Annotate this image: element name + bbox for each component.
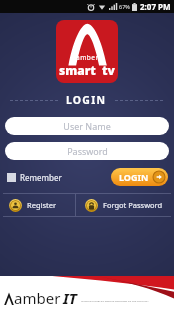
staticText: 67%	[119, 3, 130, 10]
staticText: amber	[14, 288, 61, 308]
button[interactable]: amber smart tv logo	[56, 20, 118, 83]
button[interactable]: Password	[5, 142, 169, 160]
staticText: smart	[59, 62, 96, 78]
other: Forgot Password	[85, 199, 98, 212]
staticText: LEADING INTERNET SERVICE PROVIDER OF THE…	[81, 299, 149, 302]
button[interactable]: Register	[0, 194, 75, 216]
staticText: Forgot Password	[103, 200, 163, 210]
staticText: User Name	[63, 120, 111, 132]
staticText: Register	[27, 200, 57, 210]
other: Register	[9, 199, 22, 212]
staticText: LOGIN	[119, 171, 149, 183]
button[interactable]: Remember	[6, 169, 63, 186]
staticText: tv	[102, 62, 115, 78]
button[interactable]: Forgot Password	[76, 194, 174, 216]
staticText: LOGIN	[66, 93, 107, 107]
button[interactable]: LOGIN	[111, 168, 168, 186]
staticText: 2:07 PM	[140, 1, 171, 12]
button[interactable]: User Name	[5, 117, 169, 135]
staticText: Remember	[20, 172, 62, 183]
staticText: IT	[63, 288, 77, 308]
staticText: amber	[76, 53, 99, 62]
staticText: Password	[67, 145, 108, 157]
